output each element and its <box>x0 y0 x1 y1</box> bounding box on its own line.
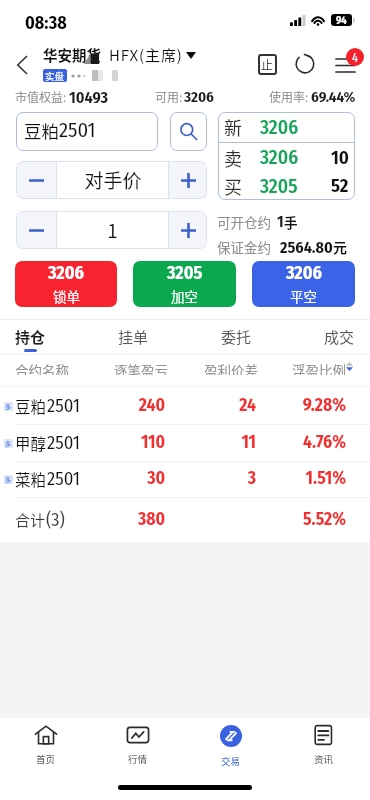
staticText: 08:38 <box>25 12 67 34</box>
staticText: 4 <box>352 50 359 65</box>
button[interactable]: 对手价 <box>57 161 168 199</box>
staticText: 浮盈比例 <box>292 360 346 375</box>
staticText: 1 <box>107 216 118 244</box>
staticText: 多 <box>5 402 12 411</box>
staticText: 行情 <box>128 752 148 766</box>
staticText: 持仓 <box>15 326 46 348</box>
staticText: 多 <box>5 475 12 484</box>
staticText: 盈利价差 <box>204 360 258 375</box>
staticText: 1.51% <box>285 468 346 489</box>
button[interactable]: Increase <box>169 161 207 199</box>
button[interactable]: 3205 <box>133 261 236 307</box>
staticText: 豆粕 <box>24 118 59 143</box>
staticText: 4.76% <box>285 432 346 453</box>
button[interactable]: Back <box>6 49 38 81</box>
staticText: 9.28% <box>285 395 346 416</box>
staticText: 锁单 <box>53 286 80 306</box>
button[interactable]: 多 <box>0 424 370 461</box>
button[interactable]: Increase <box>169 211 207 249</box>
staticText: 首页 <box>36 752 56 766</box>
button[interactable]: Menu <box>327 47 363 83</box>
staticText: 对手价 <box>84 166 142 194</box>
button[interactable]: 3206 <box>252 261 355 307</box>
staticText: 平空 <box>290 286 317 306</box>
button[interactable]: 3206 <box>15 261 117 307</box>
staticText: 甲醇 <box>15 432 47 454</box>
button[interactable]: 挂单 <box>118 326 149 349</box>
staticText: 资讯 <box>314 752 334 766</box>
button[interactable]: Refresh <box>288 47 322 81</box>
button[interactable]: 首页 <box>0 719 92 769</box>
staticText: 合计 <box>15 509 46 531</box>
staticText: 挂单 <box>118 326 149 348</box>
staticText: 380 <box>110 509 165 530</box>
staticText: 逐笔盈亏 <box>114 360 168 375</box>
staticText: 10493 <box>69 88 108 103</box>
staticText: 3206 <box>260 116 299 139</box>
button[interactable]: Stop loss order <box>250 47 284 81</box>
staticText: 30 <box>110 468 165 489</box>
staticText: 52 <box>331 175 349 197</box>
staticText: 3205 <box>167 262 203 284</box>
staticText: 委托 <box>221 326 252 348</box>
button[interactable]: 多 <box>0 387 370 424</box>
staticText: 实盘 <box>45 69 65 82</box>
staticText: 使用率: <box>269 88 309 103</box>
staticText: (3) <box>46 509 65 531</box>
staticText: 可开仓约 <box>217 212 271 232</box>
button[interactable]: 资讯 <box>277 719 370 769</box>
staticText: 市值权益: <box>15 88 67 103</box>
staticText: 1 <box>277 213 284 232</box>
staticText: 合约名称 <box>15 360 69 375</box>
staticText: 加空 <box>171 286 198 306</box>
button[interactable]: Decrease <box>16 211 56 249</box>
staticText: 卖 <box>224 145 242 171</box>
staticText: 手 <box>284 212 298 232</box>
staticText: 3 <box>200 468 256 489</box>
staticText: 可用: <box>155 88 183 103</box>
staticText: 2501 <box>59 118 96 143</box>
button[interactable]: Decrease <box>16 161 56 199</box>
staticText: HFX(主席) <box>109 44 183 66</box>
staticText: 69.44% <box>311 88 356 103</box>
staticText: 24 <box>200 395 256 416</box>
staticText: 止 <box>261 56 274 73</box>
staticText: 2564.80 <box>280 238 333 257</box>
button[interactable]: 新 <box>218 112 355 200</box>
button[interactable]: Search <box>170 112 207 151</box>
staticText: 成交 <box>324 326 355 348</box>
button[interactable]: 行情 <box>92 719 184 769</box>
staticText: 华安期货 <box>43 44 101 65</box>
staticText: 3206 <box>286 262 322 284</box>
staticText: 110 <box>110 432 165 453</box>
staticText: 5.52% <box>285 509 346 530</box>
staticText: 元 <box>333 237 347 257</box>
staticText: 新 <box>224 114 242 140</box>
staticText: 保证金约 <box>217 237 271 257</box>
button[interactable]: 委托 <box>221 326 252 349</box>
staticText: 多 <box>5 439 12 448</box>
button[interactable]: 持仓 <box>15 326 46 352</box>
staticText: 94 <box>336 14 347 26</box>
button[interactable]: 豆粕 <box>16 112 158 151</box>
staticText: 10 <box>331 147 349 169</box>
staticText: 菜粕 <box>15 468 47 490</box>
staticText: 3205 <box>260 175 298 198</box>
staticText: 11 <box>200 432 256 453</box>
button[interactable]: 成交 <box>324 326 355 349</box>
staticText: 2501 <box>47 432 81 454</box>
button[interactable]: 多 <box>0 460 370 497</box>
button[interactable]: 1 <box>57 211 168 249</box>
staticText: 2501 <box>47 468 81 490</box>
staticText: 240 <box>110 395 165 416</box>
staticText: 3206 <box>48 262 84 284</box>
staticText: 2501 <box>47 395 81 417</box>
staticText: 3206 <box>184 88 214 103</box>
button[interactable]: 交易 <box>184 719 277 769</box>
staticText: 3206 <box>260 146 299 169</box>
staticText: 交易 <box>221 754 241 768</box>
staticText: 买 <box>224 173 242 199</box>
staticText: 豆粕 <box>15 395 47 417</box>
